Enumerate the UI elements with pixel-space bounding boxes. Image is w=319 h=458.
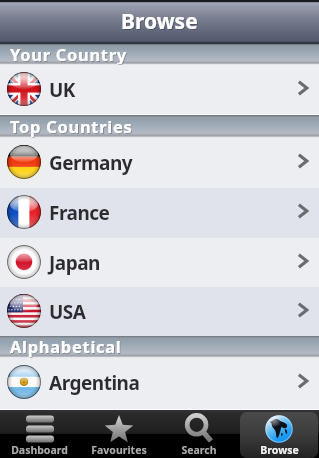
staticText: Your Country [10,43,127,64]
staticText: USA [49,299,86,325]
button[interactable]: Germany [0,138,319,188]
staticText: Alphabetical [11,336,123,358]
staticText: Search [181,443,217,457]
staticText: Dashboard [11,443,68,457]
button[interactable]: Browse [240,412,318,458]
button[interactable]: Favourites [80,412,158,458]
staticText: Browse [121,7,198,36]
button[interactable]: Dashboard [1,412,78,458]
button[interactable]: Japan [0,238,319,287]
staticText: Favourites [91,443,147,457]
staticText: UK [49,77,75,103]
staticText: France [49,200,110,226]
staticText: Top Countries [10,115,133,137]
staticText: Alphabetical [10,335,122,357]
staticText: Germany [49,150,133,176]
button[interactable]: Search [160,412,238,458]
staticText: Argentina [49,370,140,396]
button[interactable]: USA [0,287,319,336]
staticText: Browse [122,8,199,37]
staticText: Your Country [11,44,128,65]
button[interactable]: Argentina [0,358,319,408]
staticText: Top Countries [11,116,134,138]
button[interactable]: France [0,188,319,238]
staticText: Browse [260,443,299,457]
staticText: Japan [49,250,100,276]
button[interactable]: UK [0,65,319,114]
